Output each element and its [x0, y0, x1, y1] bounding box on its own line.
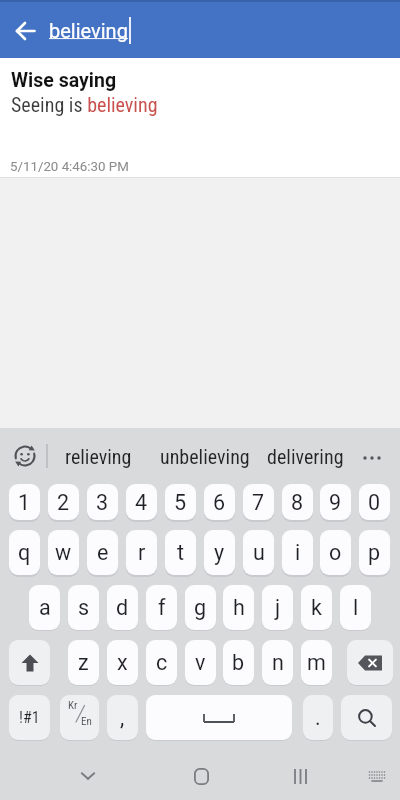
button[interactable] [347, 640, 393, 685]
staticText: 7 [252, 490, 265, 515]
button[interactable]: m [301, 640, 332, 685]
button[interactable]: x [107, 640, 138, 685]
staticText: g [194, 595, 207, 620]
staticText: o [329, 540, 342, 565]
button[interactable]: g [185, 585, 216, 630]
staticText: 3 [96, 490, 109, 515]
staticText: d [116, 595, 129, 620]
button[interactable]: u [243, 530, 274, 575]
staticText: Wise saying [11, 69, 117, 92]
staticText: delivering [267, 445, 344, 468]
staticText: i [295, 540, 301, 565]
button[interactable]: , [107, 695, 138, 740]
staticText: unbelieving [160, 445, 250, 468]
staticText: p [368, 540, 381, 565]
button[interactable]: w [48, 530, 79, 575]
button[interactable] [70, 758, 106, 794]
button[interactable] [10, 442, 40, 470]
staticText: 1 [18, 490, 31, 515]
staticText: !#1 [19, 708, 40, 727]
button[interactable]: e [87, 530, 118, 575]
button[interactable]: t [165, 530, 196, 575]
button[interactable]: unbelieving [160, 445, 250, 468]
staticText: Seeing is believing [11, 93, 158, 116]
staticText: 9 [329, 490, 342, 515]
button[interactable]: q [9, 530, 40, 575]
button[interactable] [359, 758, 395, 794]
staticText: v [195, 650, 206, 675]
button[interactable] [9, 640, 50, 685]
button[interactable] [8, 16, 44, 46]
staticText: x [117, 650, 128, 675]
staticText: , [120, 705, 125, 730]
staticText: s [78, 595, 90, 620]
staticText: 0 [368, 490, 381, 515]
button[interactable]: believing [49, 17, 130, 44]
button[interactable]: 5 [165, 484, 196, 520]
staticText: y [214, 540, 225, 565]
button[interactable]: !#1 [9, 695, 50, 740]
button[interactable]: f [146, 585, 177, 630]
staticText: z [78, 650, 89, 675]
button[interactable]: d [107, 585, 138, 630]
button[interactable]: delivering [267, 445, 344, 468]
button[interactable]: b [223, 640, 254, 685]
button[interactable]: z [68, 640, 99, 685]
staticText: w [55, 540, 72, 565]
button[interactable]: 8 [282, 484, 313, 520]
staticText: q [18, 540, 31, 565]
staticText: 6 [213, 490, 226, 515]
staticText: k [311, 595, 322, 620]
staticText: believing [49, 19, 128, 42]
staticText: u [253, 540, 265, 565]
button[interactable]: r [126, 530, 157, 575]
staticText: r [138, 540, 146, 565]
button[interactable]: 2 [48, 484, 79, 520]
button[interactable]: 0 [359, 484, 390, 520]
staticText: relieving [65, 445, 132, 468]
staticText: 5 [174, 490, 187, 515]
button[interactable]: l [340, 585, 371, 630]
button[interactable]: Wise saying [0, 58, 400, 178]
button[interactable]: 4 [126, 484, 157, 520]
button[interactable]: c [146, 640, 177, 685]
button[interactable]: 3 [87, 484, 118, 520]
staticText: e [97, 540, 109, 565]
button[interactable]: 7 [243, 484, 274, 520]
staticText: h [233, 595, 245, 620]
staticText: En [81, 715, 92, 728]
staticText: 4 [135, 490, 148, 515]
button[interactable] [341, 695, 392, 740]
button[interactable]: a [29, 585, 60, 630]
button[interactable] [146, 695, 292, 740]
button[interactable]: Kr [60, 695, 99, 740]
button[interactable]: s [68, 585, 99, 630]
button[interactable]: 9 [320, 484, 351, 520]
button[interactable]: v [185, 640, 216, 685]
button[interactable]: o [320, 530, 351, 575]
staticText: 2 [57, 490, 70, 515]
staticText: j [275, 595, 281, 620]
button[interactable]: 1 [9, 484, 40, 520]
staticText: 8 [291, 490, 304, 515]
button[interactable]: p [359, 530, 390, 575]
button[interactable]: k [301, 585, 332, 630]
button[interactable]: n [262, 640, 293, 685]
staticText: m [307, 650, 326, 675]
staticText: b [232, 650, 245, 675]
button[interactable]: h [223, 585, 254, 630]
button[interactable] [183, 758, 219, 794]
button[interactable]: relieving [65, 445, 132, 468]
staticText: c [156, 650, 168, 675]
staticText: . [315, 705, 321, 730]
button[interactable]: i [282, 530, 313, 575]
button[interactable]: 6 [204, 484, 235, 520]
staticText: l [353, 595, 359, 620]
button[interactable]: y [204, 530, 235, 575]
button[interactable] [282, 758, 318, 794]
staticText: 5/11/20 4:46:30 PM [10, 159, 129, 175]
staticText: n [272, 650, 284, 675]
button[interactable] [355, 444, 389, 472]
button[interactable]: . [303, 695, 333, 740]
button[interactable]: j [262, 585, 293, 630]
